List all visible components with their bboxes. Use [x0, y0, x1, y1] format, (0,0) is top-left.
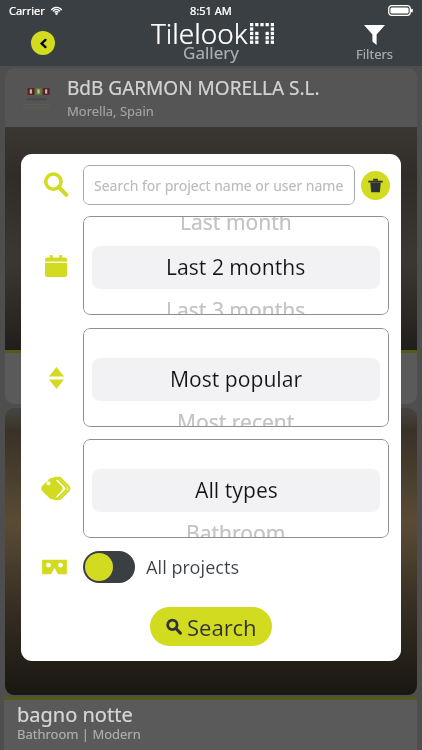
staticText: Morella, Spain — [67, 102, 154, 120]
staticText: Last 2 months — [166, 253, 306, 282]
staticText: Bathroom | Modern — [17, 725, 141, 743]
button[interactable]: Search for project name or user name — [83, 165, 355, 205]
staticText: bagno notte — [17, 701, 133, 728]
staticText: Gallery — [183, 41, 239, 64]
button[interactable]: Back — [31, 31, 55, 55]
staticText: Search — [187, 612, 257, 642]
staticText: 8:51 AM — [190, 3, 232, 18]
staticText: Carrier — [9, 3, 45, 18]
button[interactable]: Most popular — [83, 328, 389, 427]
staticText: Last month — [180, 216, 292, 237]
button[interactable]: Last month — [83, 216, 389, 315]
staticText: Tilelook — [151, 14, 248, 52]
staticText: Last 3 months — [166, 296, 306, 315]
staticText: All projects — [146, 555, 240, 580]
staticText: BdB GARMON MORELLA S.L. — [67, 75, 320, 101]
staticText: Bathroom — [186, 519, 286, 538]
staticText: Most recent — [177, 408, 295, 427]
staticText: Most popular — [170, 365, 303, 394]
button[interactable]: Filters — [352, 21, 397, 63]
button[interactable]: All projects — [83, 551, 240, 583]
button[interactable]: Search — [150, 607, 272, 646]
staticText: Search for project name or user name — [94, 176, 344, 195]
button[interactable]: Clear filters — [361, 171, 390, 200]
staticText: Filters — [356, 45, 394, 63]
staticText: All types — [195, 476, 278, 505]
button[interactable]: All types — [83, 439, 389, 538]
